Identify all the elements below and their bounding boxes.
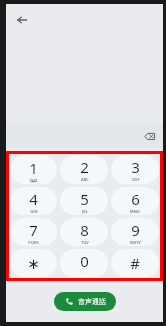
- staticText: 0: [80, 251, 89, 271]
- button[interactable]: Back: [10, 8, 34, 32]
- staticText: 1: [29, 158, 38, 178]
- button[interactable]: 2: [60, 155, 108, 184]
- staticText: 8: [80, 220, 89, 240]
- staticText: 音声通話: [78, 297, 106, 306]
- staticText: 2: [80, 157, 89, 177]
- staticText: ∗: [27, 255, 40, 272]
- staticText: GHI: [30, 209, 38, 214]
- staticText: ·: [84, 271, 86, 276]
- button[interactable]: 音声通話: [54, 292, 116, 311]
- button[interactable]: 9: [111, 218, 159, 246]
- staticText: 4: [29, 189, 38, 209]
- button[interactable]: 3: [111, 155, 159, 184]
- button[interactable]: #: [111, 249, 159, 277]
- staticText: WXYZ: [130, 240, 141, 245]
- staticText: ABC: [81, 177, 89, 182]
- button[interactable]: Backspace: [141, 128, 157, 144]
- button[interactable]: ∗: [10, 249, 57, 277]
- staticText: 9: [131, 220, 140, 240]
- button[interactable]: 0: [60, 249, 108, 277]
- staticText: 3: [131, 157, 140, 177]
- staticText: 5: [80, 189, 89, 209]
- staticText: #: [130, 253, 140, 273]
- staticText: DEF: [132, 177, 140, 182]
- button[interactable]: 5: [60, 187, 108, 215]
- button[interactable]: 1: [10, 155, 57, 184]
- staticText: TUV: [81, 240, 89, 245]
- button[interactable]: 6: [111, 187, 159, 215]
- staticText: JKL: [82, 209, 88, 214]
- staticText: 6: [131, 189, 140, 209]
- staticText: PQRS: [28, 240, 39, 245]
- staticText: MNO: [130, 209, 140, 214]
- button[interactable]: 4: [10, 187, 57, 215]
- button[interactable]: 7: [10, 218, 57, 246]
- staticText: 7: [29, 220, 38, 240]
- button[interactable]: 8: [60, 218, 108, 246]
